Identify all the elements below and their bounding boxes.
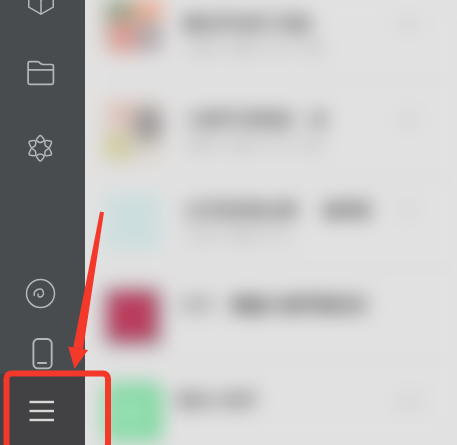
button[interactable]: Mini Program [25, 278, 56, 309]
staticText: 云开发控制台测 [184, 201, 296, 221]
button[interactable]: Files [26, 58, 56, 88]
staticText: 新建小程序项目目 [231, 295, 367, 316]
button[interactable]: 微信小程序 [0, 377, 457, 445]
button[interactable]: Project [25, 0, 57, 16]
staticText: 小程序示例项目 [184, 110, 296, 130]
staticText: 开发版 · 基础库 2.19.4 · 调试 [185, 40, 325, 55]
staticText: 编译器 [323, 201, 371, 221]
staticText: 打开 [181, 296, 213, 316]
button[interactable]: 打开 [0, 282, 457, 354]
staticText: 正式版 · 基础库 2.16.1 [185, 227, 294, 242]
button[interactable]: Components [25, 133, 56, 164]
button[interactable]: Menu [0, 374, 85, 445]
button[interactable]: 微信开发者工具版 [0, 0, 457, 72]
button[interactable]: Simulator [28, 334, 58, 374]
staticText: 微信小程序 [177, 391, 257, 411]
staticText: 微信开发者工具版 [183, 14, 311, 34]
button[interactable]: 云开发控制台测 [0, 187, 457, 259]
button[interactable]: 小程序示例项目 [0, 96, 457, 168]
